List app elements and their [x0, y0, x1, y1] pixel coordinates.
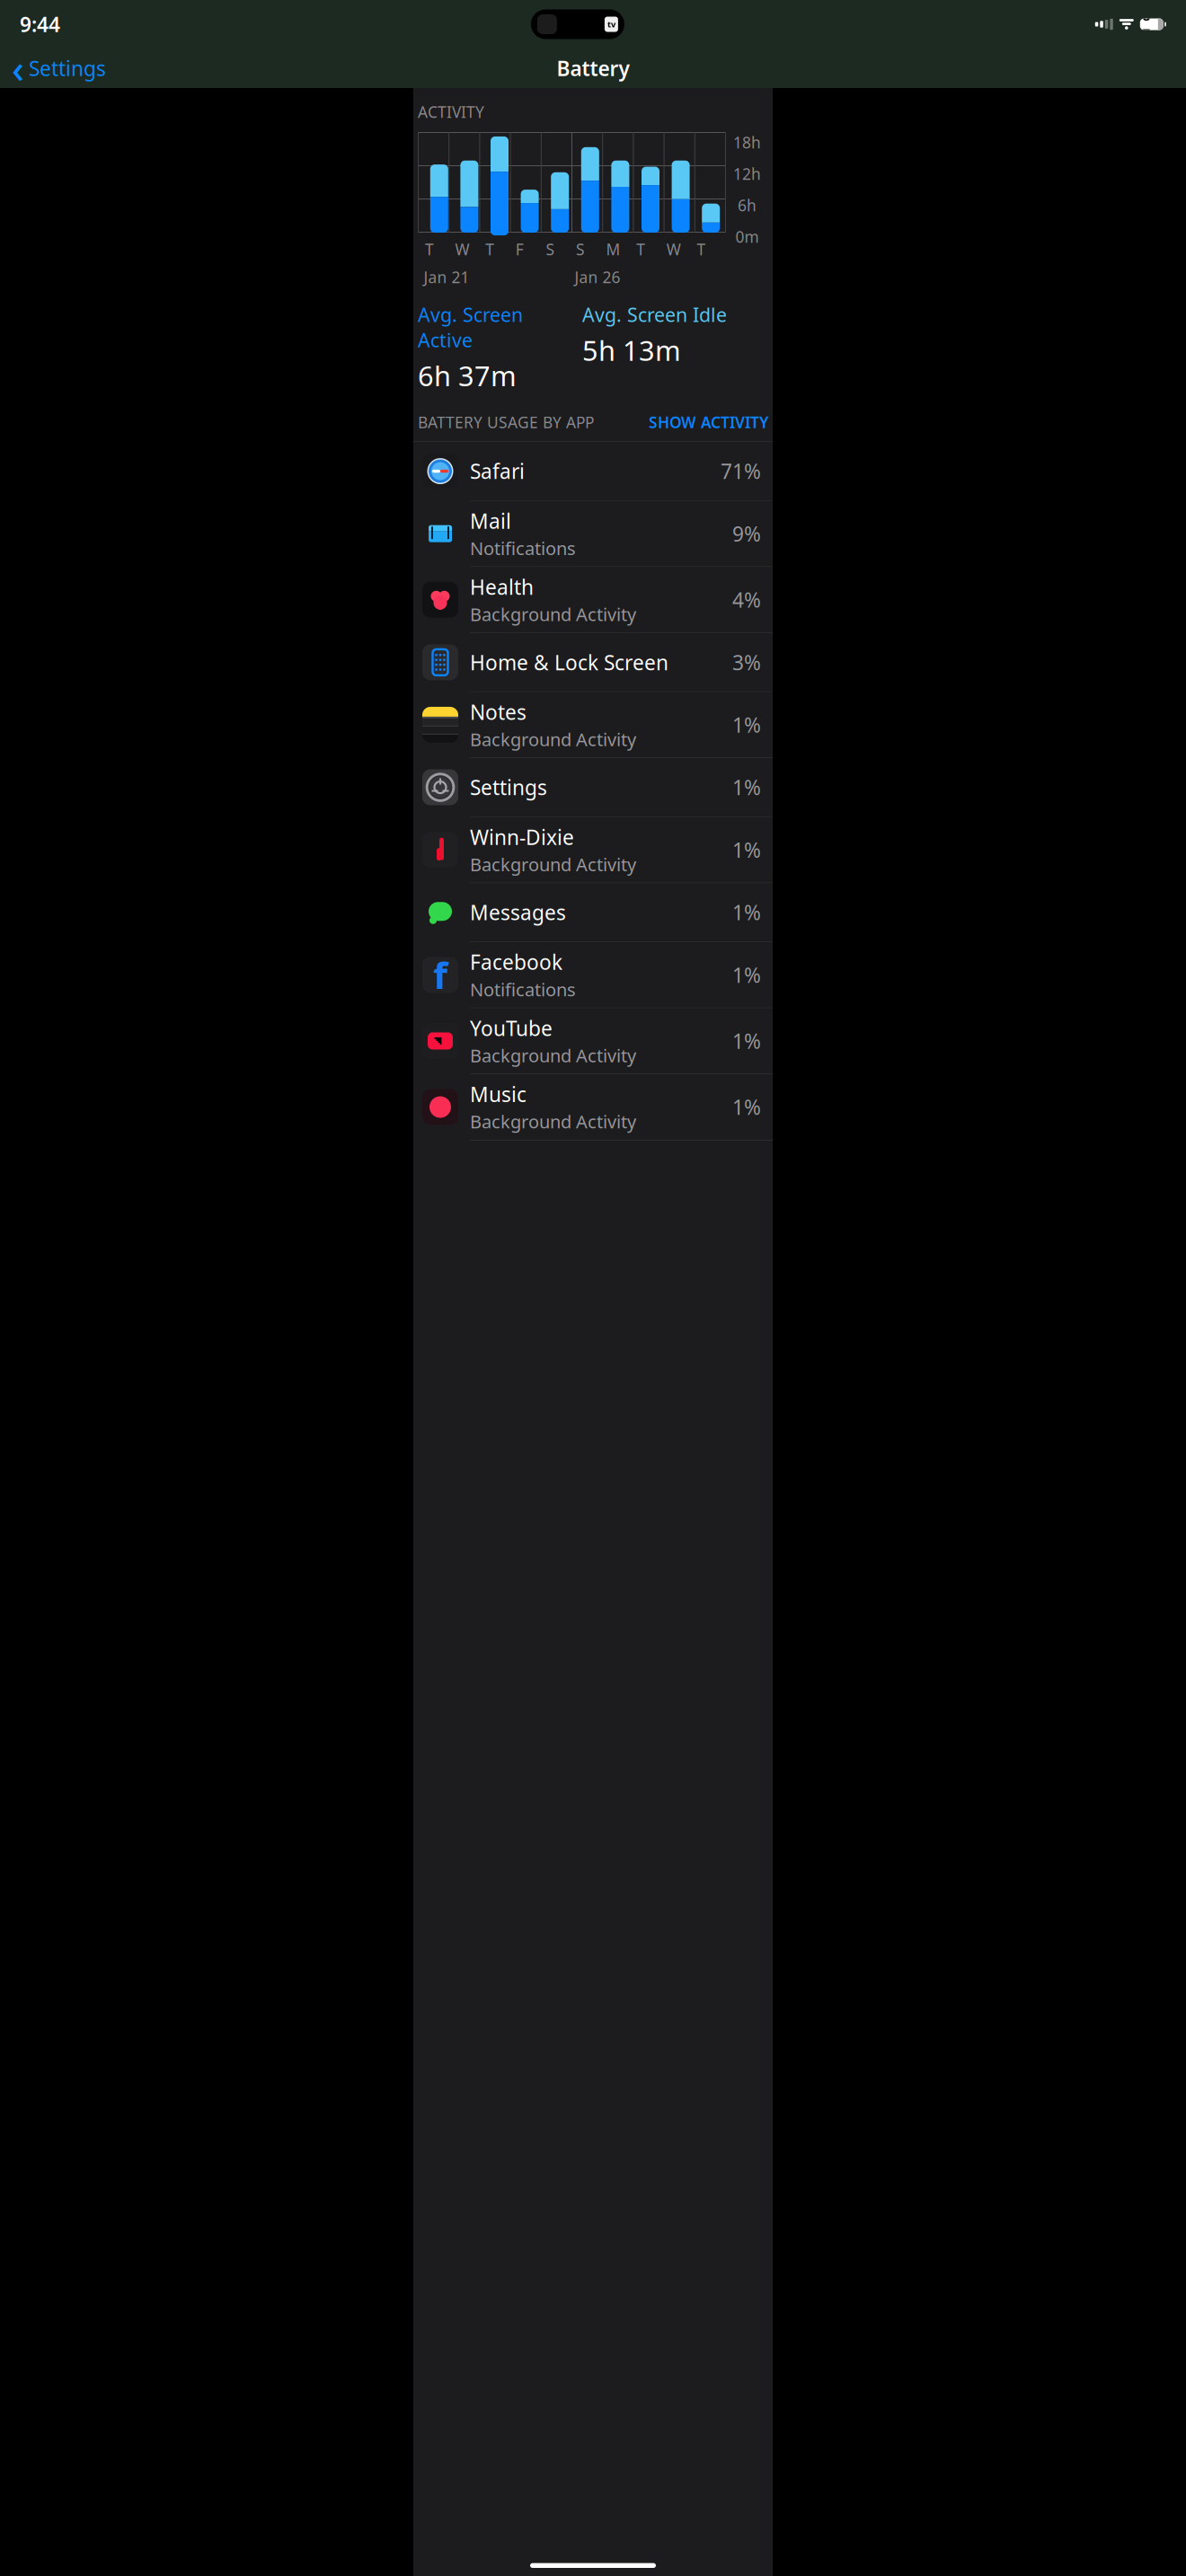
- staticText: 9:44: [20, 11, 60, 38]
- staticText: T: [697, 239, 706, 260]
- staticText: M: [606, 239, 620, 260]
- staticText: Facebook: [470, 948, 562, 976]
- staticText: 12h: [733, 163, 761, 184]
- staticText: YouTube: [470, 1015, 553, 1042]
- button[interactable]: Mail: [413, 501, 773, 567]
- button[interactable]: Messages: [413, 883, 773, 942]
- staticText: Health: [470, 573, 534, 600]
- staticText: 87: [1143, 7, 1150, 42]
- staticText: Winn-Dixie: [470, 823, 574, 850]
- staticText: Battery: [557, 55, 629, 82]
- staticText: Background Activity: [470, 602, 636, 626]
- staticText: Background Activity: [470, 1043, 636, 1067]
- staticText: Safari: [470, 458, 525, 485]
- staticText: 71%: [721, 458, 761, 485]
- button[interactable]: Health: [413, 567, 773, 633]
- staticText: ACTIVITY: [418, 101, 484, 122]
- staticText: Avg. Screen Active: [418, 302, 523, 353]
- staticText: Messages: [470, 899, 566, 926]
- staticText: W: [666, 239, 681, 260]
- button[interactable]: SHOW ACTIVITY: [649, 412, 768, 432]
- staticText: Avg. Screen Idle: [582, 302, 727, 327]
- staticText: Music: [470, 1081, 527, 1108]
- button[interactable]: Safari: [413, 442, 773, 501]
- staticText: Background Activity: [470, 727, 636, 751]
- staticText: 1%: [732, 1094, 761, 1121]
- staticText: ‹: [12, 43, 24, 94]
- staticText: 6h: [738, 195, 757, 216]
- staticText: Notifications: [470, 977, 576, 1001]
- staticText: 1%: [732, 711, 761, 738]
- staticText: 1%: [732, 1027, 761, 1054]
- staticText: S: [576, 239, 585, 260]
- staticText: Jan 21: [424, 267, 469, 287]
- staticText: f: [433, 950, 447, 1000]
- staticText: T: [425, 239, 434, 260]
- button[interactable]: Settings: [413, 758, 773, 817]
- staticText: 0m: [735, 226, 759, 247]
- staticText: F: [516, 239, 524, 260]
- button[interactable]: Music: [413, 1074, 773, 1140]
- staticText: Background Activity: [470, 852, 636, 876]
- staticText: S: [546, 239, 555, 260]
- staticText: 4%: [732, 586, 761, 613]
- staticText: 3%: [732, 649, 761, 676]
- staticText: T: [636, 239, 645, 260]
- staticText: Home & Lock Screen: [470, 649, 668, 676]
- staticText: Notes: [470, 698, 527, 725]
- button[interactable]: ‹: [4, 40, 113, 96]
- staticText: 5h 13m: [582, 332, 681, 368]
- staticText: BATTERY USAGE BY APP: [418, 412, 594, 432]
- staticText: Settings: [29, 55, 106, 82]
- staticText: 1%: [732, 899, 761, 926]
- button[interactable]: Winn-Dixie: [413, 817, 773, 883]
- staticText: W: [455, 239, 470, 260]
- staticText: tv: [607, 19, 615, 30]
- button[interactable]: Home & Lock Screen: [413, 633, 773, 692]
- button[interactable]: YouTube: [413, 1008, 773, 1074]
- staticText: Settings: [470, 774, 547, 801]
- staticText: SHOW ACTIVITY: [649, 412, 768, 432]
- staticText: Mail: [470, 507, 511, 534]
- button[interactable]: Notes: [413, 692, 773, 758]
- staticText: 1%: [732, 774, 761, 801]
- staticText: 6h 37m: [418, 357, 517, 394]
- staticText: 1%: [732, 961, 761, 988]
- button[interactable]: f: [413, 942, 773, 1008]
- staticText: Notifications: [470, 536, 576, 560]
- staticText: Jan 26: [575, 267, 620, 287]
- staticText: 1%: [732, 836, 761, 863]
- staticText: Background Activity: [470, 1110, 636, 1133]
- staticText: 18h: [733, 132, 761, 153]
- staticText: 9%: [732, 520, 761, 547]
- staticText: T: [485, 239, 494, 260]
